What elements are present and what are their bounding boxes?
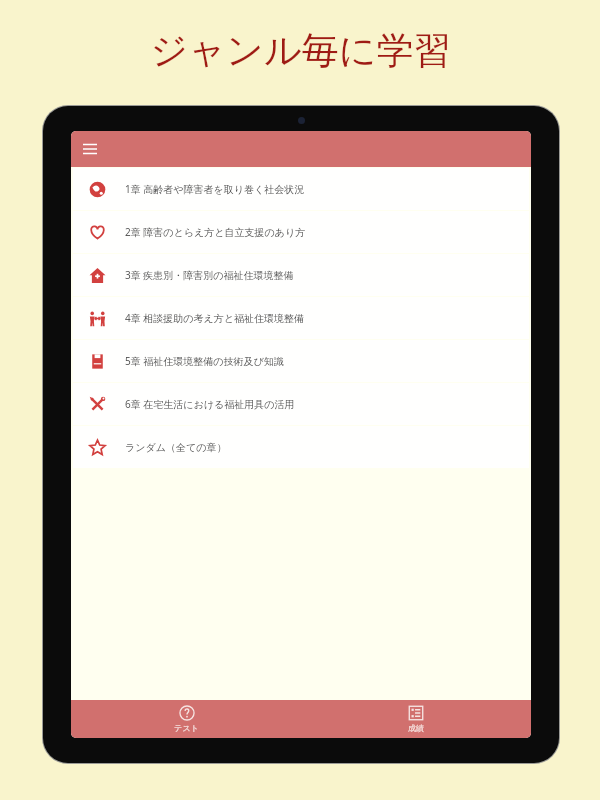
staticText: 1章 高齢者や障害者を取り巻く社会状況: [125, 182, 305, 196]
button[interactable]: 6章 在宅生活における福祉用具の活用: [73, 383, 529, 425]
button[interactable]: 2章 障害のとらえ方と自立支援のあり方: [73, 211, 529, 253]
button[interactable]: 1章 高齢者や障害者を取り巻く社会状況: [73, 168, 529, 210]
staticText: 成績: [408, 723, 424, 733]
button[interactable]: 4章 相談援助の考え方と福祉住環境整備: [73, 297, 529, 339]
staticText: 4章 相談援助の考え方と福祉住環境整備: [125, 311, 305, 325]
staticText: 6章 在宅生活における福祉用具の活用: [125, 397, 295, 411]
staticText: ランダム（全ての章）: [125, 441, 227, 454]
staticText: 2章 障害のとらえ方と自立支援のあり方: [125, 225, 306, 239]
button[interactable]: 5章 福祉住環境整備の技術及び知識: [73, 340, 529, 382]
button[interactable]: テスト: [71, 700, 301, 738]
button[interactable]: 成績: [301, 700, 531, 738]
staticText: 3章 疾患別・障害別の福祉住環境整備: [125, 268, 294, 282]
staticText: ジャンル毎に学習: [150, 27, 451, 74]
button[interactable]: ランダム（全ての章）: [73, 426, 529, 468]
staticText: 5章 福祉住環境整備の技術及び知識: [125, 354, 284, 368]
button[interactable]: 3章 疾患別・障害別の福祉住環境整備: [73, 254, 529, 296]
staticText: テスト: [174, 723, 199, 733]
button[interactable]: Menu: [77, 136, 103, 162]
